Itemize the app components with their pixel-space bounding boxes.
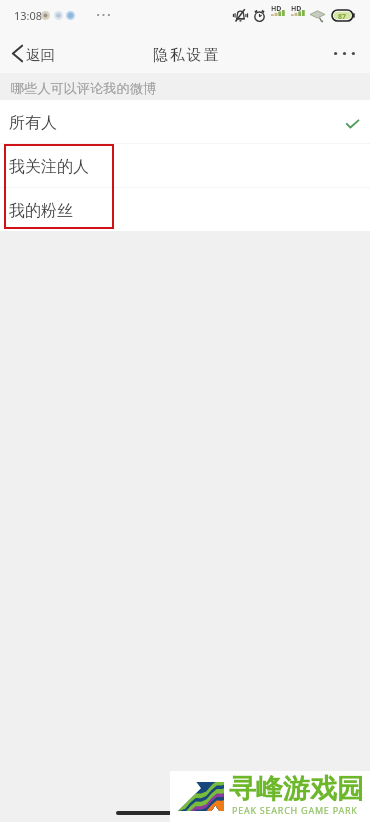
button[interactable]: More options <box>321 30 370 73</box>
staticText: 87 <box>338 12 347 22</box>
staticText: 寻峰游戏园 <box>229 772 364 806</box>
staticText: HD <box>271 4 282 14</box>
button[interactable]: 我的粉丝 <box>0 188 370 231</box>
staticText: PEAK SEARCH GAME PARK <box>232 804 358 816</box>
button[interactable]: 我关注的人 <box>0 144 370 187</box>
button[interactable]: 返回 <box>0 30 67 73</box>
staticText: 13:08 <box>14 8 43 23</box>
staticText: 哪些人可以评论我的微博 <box>11 80 157 97</box>
staticText: HD <box>291 4 302 14</box>
staticText: 隐私设置 <box>153 46 221 65</box>
staticText: 我的粉丝 <box>9 201 73 221</box>
staticText: 我关注的人 <box>9 157 89 177</box>
staticText: 返回 <box>26 46 55 64</box>
button[interactable]: 所有人 <box>0 100 370 143</box>
staticText: 所有人 <box>9 113 57 133</box>
